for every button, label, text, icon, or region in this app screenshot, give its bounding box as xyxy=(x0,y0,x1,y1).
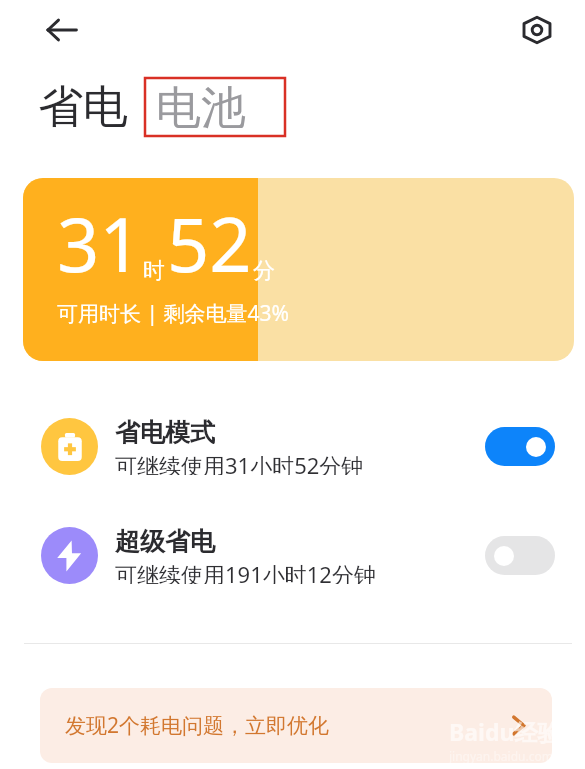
staticText: 省电模式 xyxy=(115,417,215,448)
staticText: 发现2个耗电问题，立即优化 xyxy=(65,711,330,740)
staticText: 省电 xyxy=(38,79,128,136)
staticText: 时 xyxy=(143,257,165,285)
staticText: jingyan.baidu.com xyxy=(449,748,553,764)
button[interactable]: Back xyxy=(40,8,84,52)
staticText: Baidu经验 xyxy=(449,716,561,747)
staticText: 电池 xyxy=(156,80,246,134)
button[interactable]: Off xyxy=(485,536,555,575)
button[interactable]: 省电 xyxy=(38,79,128,136)
button[interactable]: 超级省电 xyxy=(0,526,585,584)
staticText: 可用时长 | 剩余电量43% xyxy=(57,299,289,328)
staticText: 可继续使用31小时52分钟 xyxy=(115,450,364,475)
button[interactable]: Settings xyxy=(517,10,557,50)
button[interactable]: On xyxy=(485,427,555,466)
staticText: 超级省电 xyxy=(115,526,215,557)
button[interactable]: 31 xyxy=(23,178,574,361)
staticText: 可继续使用191小时12分钟 xyxy=(115,559,376,584)
staticText: 分 xyxy=(253,257,275,285)
staticText: 52 xyxy=(167,193,252,294)
staticText: 31 xyxy=(57,193,142,294)
button[interactable]: 省电模式 xyxy=(0,417,585,475)
button[interactable]: 发现2个耗电问题，立即优化 xyxy=(40,688,552,763)
button[interactable]: 电池 xyxy=(142,75,260,139)
